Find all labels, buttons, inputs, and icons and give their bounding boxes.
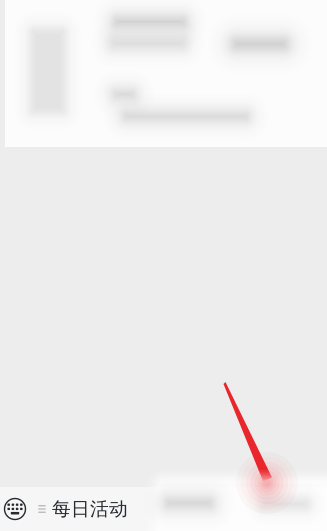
staticText: 每日活动	[52, 497, 128, 520]
button[interactable]: 每日活动	[30, 487, 136, 531]
button[interactable]: Keyboard	[0, 487, 30, 531]
